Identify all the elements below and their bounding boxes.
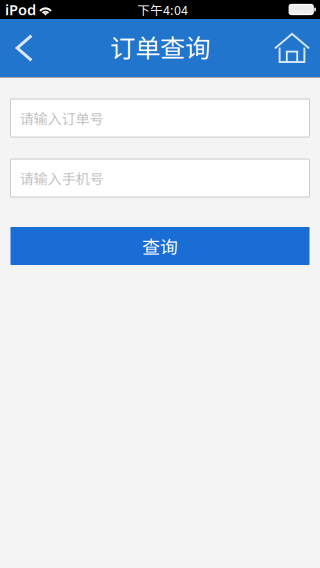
staticText: 下午4:04: [137, 0, 188, 19]
staticText: 请输入订单号: [19, 108, 103, 128]
staticText: 请输入手机号: [19, 168, 103, 188]
staticText: iPod: [5, 0, 36, 19]
staticText: 查询: [142, 233, 178, 259]
button[interactable]: Back: [0, 19, 48, 77]
button[interactable]: Home: [264, 19, 320, 77]
button[interactable]: 查询: [10, 227, 309, 265]
staticText: 订单查询: [110, 28, 210, 65]
